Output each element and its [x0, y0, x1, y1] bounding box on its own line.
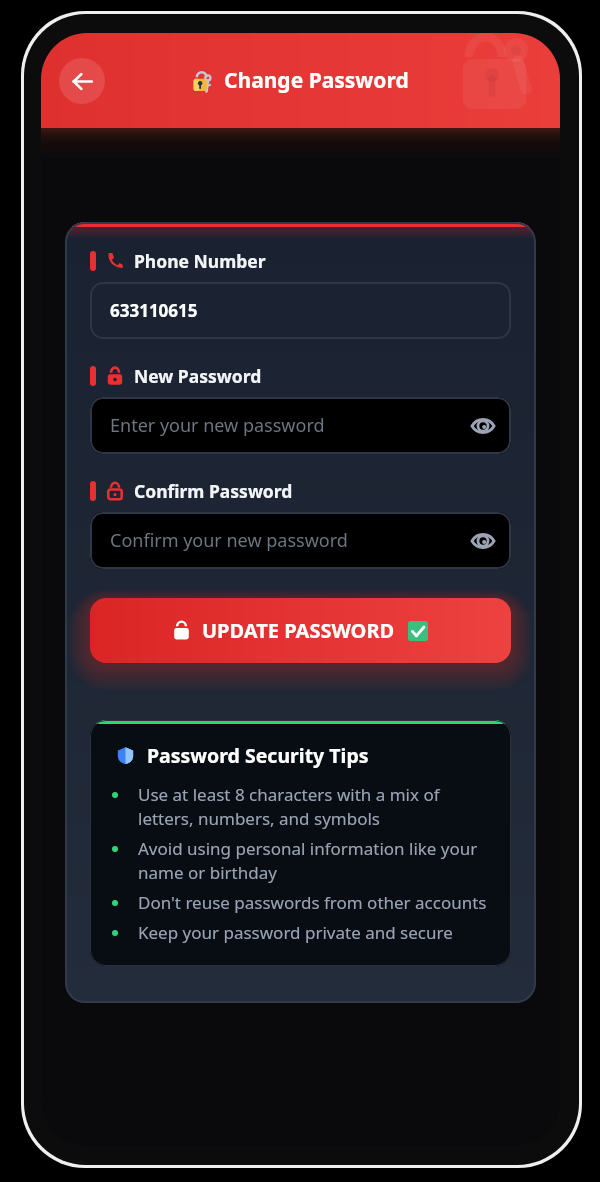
button[interactable]: Back [59, 58, 105, 104]
staticText: 633110615 [110, 299, 198, 322]
button[interactable]: Enter your new password [90, 397, 511, 454]
button[interactable]: UPDATE PASSWORD [90, 598, 511, 663]
button[interactable]: Show password [465, 411, 495, 441]
staticText: Confirm your new password [110, 528, 348, 553]
staticText: Confirm Password [134, 479, 293, 503]
staticText: Keep your password private and secure [138, 921, 490, 944]
staticText: Avoid using personal information like yo… [138, 837, 490, 884]
staticText: New Password [134, 364, 262, 388]
button[interactable]: Confirm your new password [90, 512, 511, 569]
staticText: UPDATE PASSWORD [202, 617, 395, 644]
staticText: Password Security Tips [147, 742, 369, 769]
staticText: Change Password [224, 66, 409, 95]
staticText: Phone Number [134, 249, 266, 273]
staticText: Enter your new password [110, 413, 325, 438]
staticText: Don't reuse passwords from other account… [138, 891, 490, 914]
staticText: Use at least 8 characters with a mix of … [138, 783, 490, 830]
button[interactable]: Show password [465, 526, 495, 556]
button[interactable]: 633110615 [90, 282, 511, 339]
